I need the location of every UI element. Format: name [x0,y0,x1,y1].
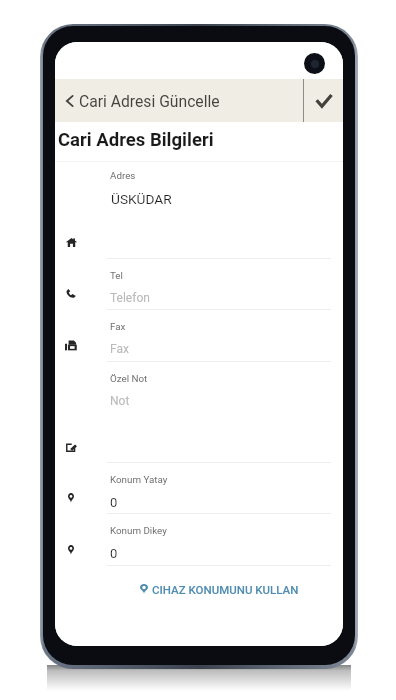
staticText: Konum Dikey [110,525,167,536]
staticText: 0 [110,495,118,510]
staticText: CIHAZ KONUMUNU KULLAN [152,583,299,596]
staticText: Adres [110,170,136,181]
staticText: Tel [110,270,123,281]
button[interactable]: Cari Adresi Güncelle [55,79,303,122]
staticText: ÜSKÜDAR [111,191,172,207]
staticText: Fax [110,321,126,332]
button[interactable]: CIHAZ KONUMUNU KULLAN [107,566,331,606]
staticText: 0 [110,546,118,561]
staticText: Cari Adresi Güncelle [79,92,220,110]
staticText: Telefon [110,291,150,305]
staticText: Cari Adres Bilgileri [58,129,214,151]
staticText: Not [110,394,130,408]
button[interactable]: Kaydet [304,79,343,122]
staticText: Fax [110,342,129,356]
staticText: Özel Not [110,373,148,384]
staticText: Konum Yatay [110,474,168,485]
